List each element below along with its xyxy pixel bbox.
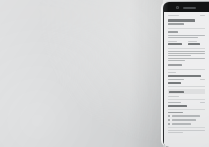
button[interactable] — [168, 79, 205, 80]
button[interactable] — [168, 15, 205, 16]
other: Phone showing document screen — [161, 1, 209, 147]
button[interactable] — [168, 119, 205, 121]
button[interactable] — [168, 115, 205, 117]
button[interactable] — [168, 89, 205, 94]
button[interactable] — [168, 123, 205, 125]
button[interactable] — [168, 102, 205, 103]
